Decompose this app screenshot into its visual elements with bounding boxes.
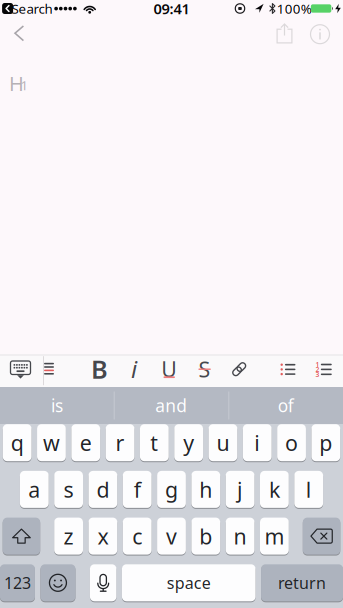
button[interactable]: n <box>226 518 254 555</box>
button[interactable]: j <box>226 471 254 508</box>
button[interactable]: Numbered list <box>311 358 337 381</box>
button[interactable]: p <box>311 424 340 461</box>
button[interactable]: and <box>114 387 228 424</box>
button[interactable]: r <box>106 424 134 461</box>
button[interactable]: is <box>0 387 114 424</box>
staticText: space <box>167 572 211 593</box>
button[interactable]: o <box>277 424 306 461</box>
staticText: g <box>165 475 178 503</box>
staticText: 2 <box>315 365 319 374</box>
button[interactable]: w <box>37 424 66 461</box>
button[interactable]: k <box>260 471 289 508</box>
staticText: is <box>51 394 63 417</box>
staticText: i <box>131 353 137 385</box>
button[interactable]: a <box>20 471 49 508</box>
staticText: l <box>306 475 312 503</box>
staticText: H <box>9 70 24 97</box>
staticText: 3 <box>315 370 319 379</box>
staticText: m <box>264 522 284 550</box>
button[interactable]: l <box>294 471 323 508</box>
staticText: u <box>216 428 229 457</box>
button[interactable]: d <box>88 471 117 508</box>
staticText: 1 <box>315 360 319 369</box>
staticText: s <box>64 475 74 503</box>
staticText: p <box>319 428 332 457</box>
button[interactable]: b <box>191 518 220 555</box>
button[interactable]: Space <box>122 564 255 601</box>
button[interactable]: h <box>191 471 220 508</box>
button[interactable]: c <box>123 518 152 555</box>
staticText: S <box>199 355 211 383</box>
staticText: x <box>97 522 108 550</box>
button[interactable]: Link <box>230 357 248 382</box>
staticText: c <box>132 522 142 550</box>
button[interactable]: g <box>157 471 186 508</box>
staticText: y <box>183 428 194 457</box>
staticText: 09:41 <box>153 0 189 18</box>
staticText: 100% <box>277 0 312 17</box>
staticText: Search <box>11 0 52 17</box>
button[interactable]: Shift <box>3 518 40 555</box>
button[interactable]: q <box>3 424 31 461</box>
staticText: i <box>254 428 260 457</box>
staticText: of <box>278 394 294 417</box>
staticText: o <box>285 428 298 457</box>
button[interactable]: u <box>208 424 237 461</box>
button[interactable]: Strikethrough <box>193 355 216 383</box>
staticText: f <box>134 475 141 503</box>
button[interactable]: t <box>140 424 169 461</box>
staticText: a <box>28 475 40 503</box>
staticText: e <box>80 428 92 457</box>
button[interactable]: Italic <box>123 353 145 385</box>
button[interactable]: Dictate <box>90 564 116 601</box>
staticText: b <box>199 522 212 550</box>
staticText: h <box>199 475 212 503</box>
button[interactable]: Return <box>261 564 343 601</box>
staticText: r <box>115 428 124 457</box>
button[interactable]: Underline <box>156 355 182 383</box>
staticText: U <box>161 355 177 383</box>
staticText: 1 <box>21 76 29 94</box>
button[interactable]: Numbers <box>0 564 35 601</box>
staticText: z <box>64 522 74 550</box>
staticText: k <box>269 475 280 503</box>
button[interactable]: f <box>123 471 152 508</box>
button[interactable]: Share <box>272 19 296 47</box>
staticText: and <box>155 394 187 417</box>
button[interactable]: Bulleted list <box>275 358 300 380</box>
staticText: n <box>234 522 247 550</box>
staticText: d <box>96 475 109 503</box>
button[interactable]: i <box>243 424 272 461</box>
button[interactable]: Info <box>306 21 333 48</box>
button[interactable]: Bold <box>85 352 114 386</box>
button[interactable]: Paragraph styles <box>39 358 59 380</box>
staticText: v <box>166 522 177 550</box>
staticText: j <box>237 475 243 503</box>
staticText: w <box>43 428 60 457</box>
button[interactable]: Delete <box>303 518 340 555</box>
staticText: return <box>278 572 326 593</box>
button[interactable]: Back <box>4 15 34 51</box>
staticText: B <box>91 352 108 386</box>
button[interactable]: x <box>88 518 117 555</box>
staticText: t <box>150 428 158 457</box>
button[interactable]: of <box>228 387 343 424</box>
button[interactable]: e <box>71 424 100 461</box>
staticText: q <box>11 428 24 457</box>
button[interactable]: z <box>54 518 83 555</box>
button[interactable]: m <box>260 518 289 555</box>
button[interactable]: v <box>157 518 186 555</box>
button[interactable]: y <box>174 424 203 461</box>
button[interactable]: s <box>54 471 83 508</box>
button[interactable]: Emoji <box>40 564 75 601</box>
button[interactable]: Dismiss keyboard <box>4 356 36 384</box>
staticText: 123 <box>4 572 31 593</box>
